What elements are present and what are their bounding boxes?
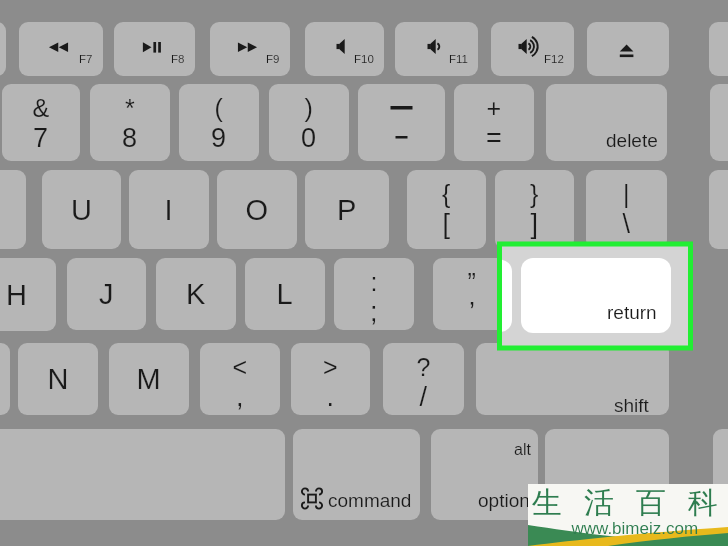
button[interactable] bbox=[0, 0, 728, 546]
